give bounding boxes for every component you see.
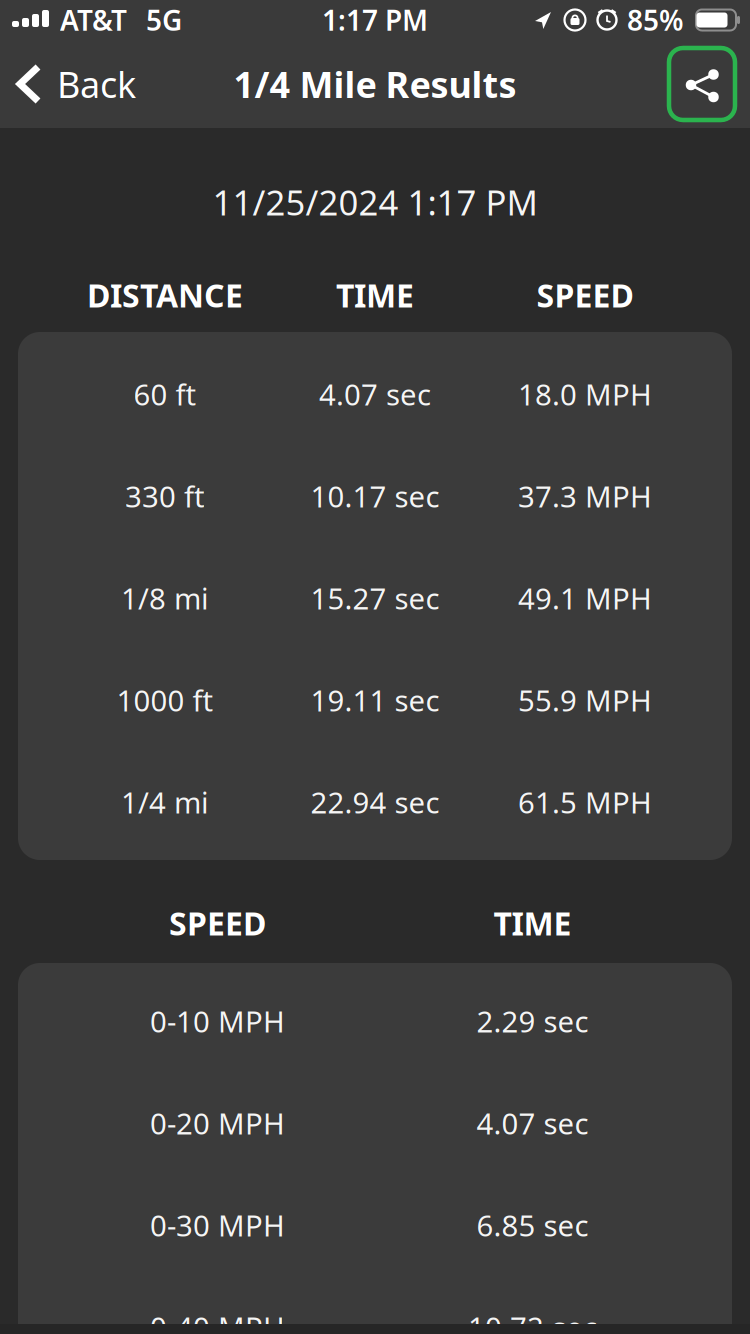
- staticText: 330 ft: [125, 476, 205, 515]
- staticText: 49.1 MPH: [518, 578, 652, 617]
- staticText: 0-10 MPH: [150, 1001, 285, 1040]
- button[interactable]: Share: [666, 45, 738, 123]
- staticText: 5G: [146, 1, 182, 39]
- staticText: AT&T: [60, 1, 127, 39]
- staticText: 0-20 MPH: [150, 1103, 285, 1142]
- staticText: SPEED: [536, 274, 633, 316]
- staticText: 1/4 mi: [121, 782, 209, 821]
- staticText: 10.72 sec: [468, 1307, 597, 1334]
- staticText: SPEED: [169, 902, 266, 944]
- staticText: 10.17 sec: [310, 476, 439, 515]
- staticText: TIME: [336, 274, 414, 316]
- staticText: 60 ft: [133, 374, 196, 413]
- staticText: 11/25/2024 1:17 PM: [212, 179, 537, 225]
- staticText: DISTANCE: [87, 274, 243, 316]
- staticText: 55.9 MPH: [518, 680, 652, 719]
- staticText: 1:17 PM: [322, 1, 428, 39]
- staticText: 0-40 MPH: [150, 1307, 285, 1334]
- button[interactable]: Back: [0, 60, 136, 108]
- staticText: 4.07 sec: [476, 1103, 588, 1142]
- staticText: 22.94 sec: [310, 782, 439, 821]
- staticText: TIME: [493, 902, 571, 944]
- staticText: Back: [57, 60, 136, 108]
- staticText: 85%: [627, 1, 684, 39]
- staticText: 61.5 MPH: [518, 782, 652, 821]
- staticText: 4.07 sec: [319, 374, 431, 413]
- staticText: 15.27 sec: [310, 578, 439, 617]
- staticText: 6.85 sec: [476, 1205, 588, 1244]
- staticText: 2.29 sec: [476, 1001, 588, 1040]
- staticText: 37.3 MPH: [518, 476, 652, 515]
- staticText: 1/8 mi: [121, 578, 209, 617]
- staticText: 1/4 Mile Results: [233, 60, 516, 108]
- staticText: 19.11 sec: [310, 680, 439, 719]
- staticText: 18.0 MPH: [518, 374, 652, 413]
- staticText: 1000 ft: [116, 680, 213, 719]
- staticText: 0-30 MPH: [150, 1205, 285, 1244]
